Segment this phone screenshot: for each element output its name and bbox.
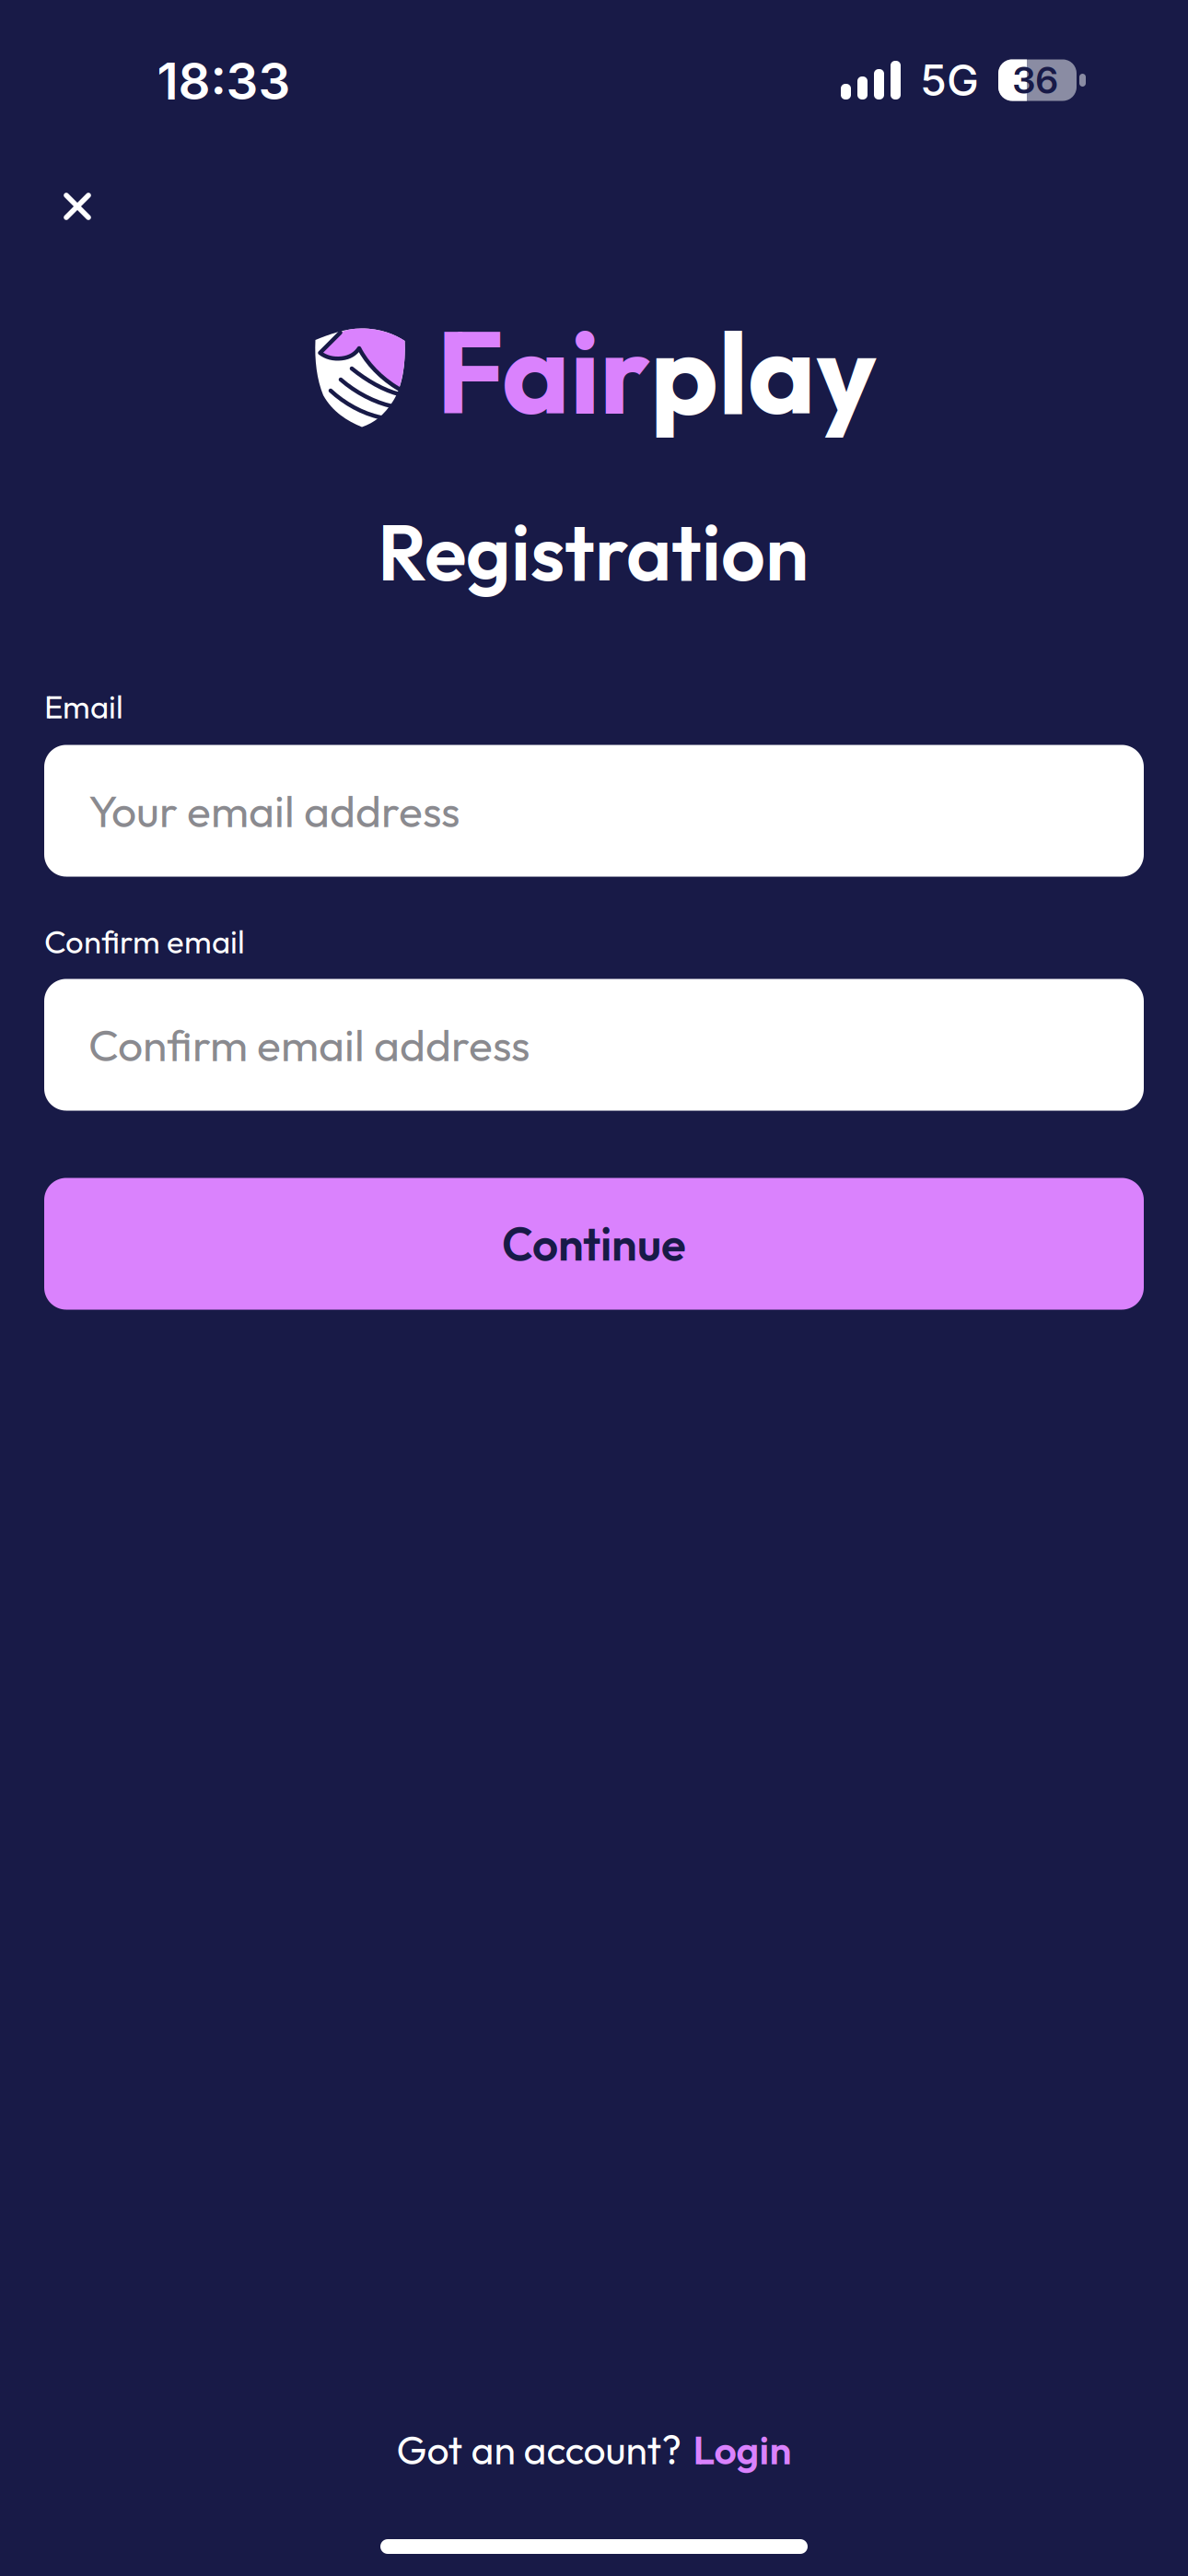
button[interactable]: Continue xyxy=(44,1178,1144,1310)
staticText: Confirm email xyxy=(44,922,245,962)
button[interactable]: Your email address xyxy=(44,745,1144,877)
staticText: Fair xyxy=(437,299,650,443)
staticText: Confirm email address xyxy=(88,1017,530,1073)
staticText: Login xyxy=(693,2425,792,2475)
button[interactable]: Close xyxy=(35,164,120,249)
staticText: 36 xyxy=(1013,58,1058,102)
staticText: 18:33 xyxy=(157,51,291,111)
staticText: 5G xyxy=(920,54,979,106)
staticText: Continue xyxy=(502,1215,686,1272)
staticText: Your email address xyxy=(88,783,460,839)
button[interactable]: Confirm email address xyxy=(44,979,1144,1111)
button[interactable]: Got an account? xyxy=(396,2425,792,2475)
staticText: Got an account? xyxy=(396,2425,682,2475)
staticText: Email xyxy=(44,687,123,727)
staticText: play xyxy=(650,299,877,443)
staticText: Registration xyxy=(378,503,809,601)
